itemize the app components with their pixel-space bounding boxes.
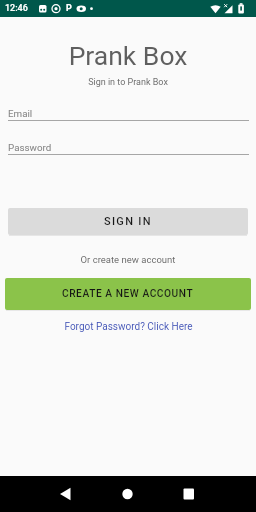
button[interactable]: CREATE A NEW ACCOUNT	[5, 278, 251, 310]
button[interactable]: Email	[8, 104, 249, 121]
button[interactable]	[52, 480, 80, 508]
staticText: 12:46	[5, 3, 28, 14]
staticText: Forgot Password? Click Here	[64, 321, 193, 333]
staticText: CREATE A NEW ACCOUNT	[62, 288, 194, 300]
button[interactable]	[113, 480, 141, 508]
button[interactable]: Password	[8, 138, 249, 155]
staticText: Prank Box	[0, 40, 256, 71]
staticText: P	[66, 3, 72, 14]
button[interactable]: Forgot Password? Click Here	[60, 319, 196, 335]
button[interactable]	[175, 480, 203, 508]
staticText: Or create new account	[0, 254, 256, 265]
staticText: Sign in to Prank Box	[0, 77, 256, 88]
staticText: Email	[8, 108, 33, 119]
staticText: Password	[8, 142, 52, 153]
staticText: SIGN IN	[104, 215, 152, 228]
button[interactable]: SIGN IN	[8, 208, 248, 235]
